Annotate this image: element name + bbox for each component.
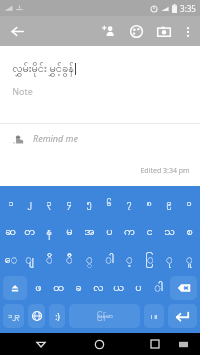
button[interactable]: ပ xyxy=(99,218,119,246)
button[interactable]: ြ xyxy=(139,246,159,274)
staticText: ၀ xyxy=(186,197,192,210)
button[interactable]: အ xyxy=(79,218,99,246)
staticText: ၁၂၃ xyxy=(8,311,20,321)
button[interactable]: Remind me xyxy=(0,124,200,152)
staticText: ၅ xyxy=(86,197,92,210)
staticText: အ xyxy=(84,224,95,240)
button[interactable]: ၁ xyxy=(1,189,20,218)
staticText: ထ xyxy=(53,280,64,296)
staticText: ါ xyxy=(105,252,114,268)
staticText: ဆ xyxy=(5,224,16,240)
button[interactable]: ျ xyxy=(20,246,39,274)
staticText: Remind me xyxy=(33,132,78,144)
staticText: ၊ ။ xyxy=(151,310,157,322)
button[interactable]: ၆ xyxy=(99,189,119,218)
button[interactable]: Backspace xyxy=(170,276,197,300)
staticText: စ xyxy=(186,224,193,240)
button[interactable]: လ xyxy=(88,274,108,302)
staticText: တ xyxy=(24,224,35,240)
button[interactable]: ၂ xyxy=(20,189,39,218)
button[interactable]: ခ xyxy=(68,274,88,302)
button[interactable]: Shift xyxy=(3,276,27,300)
staticText: ၆ xyxy=(106,197,112,210)
button[interactable]: ဆ xyxy=(1,218,20,246)
staticText: ီ xyxy=(66,252,73,268)
button[interactable]: Space xyxy=(69,304,140,328)
button[interactable]: န xyxy=(39,218,59,246)
button[interactable]: ၃ xyxy=(39,189,59,218)
staticText: ၇ xyxy=(126,197,132,210)
button[interactable]: လွှမ်းမိုင်း မွှင့်ခွန် xyxy=(0,60,200,77)
staticText: ု xyxy=(166,252,173,268)
staticText: ပ xyxy=(106,224,113,240)
button[interactable]: သ xyxy=(159,218,179,246)
staticText: ၄ xyxy=(66,197,72,210)
button[interactable]: ယ xyxy=(108,274,128,302)
staticText: Note xyxy=(12,85,33,97)
staticText: ေ xyxy=(4,252,18,268)
button[interactable]: ီ xyxy=(59,246,79,274)
staticText: ၈ xyxy=(146,197,152,210)
staticText: ျ xyxy=(25,252,34,268)
button[interactable]: Emoji xyxy=(49,304,65,328)
staticText: ၁ xyxy=(8,197,14,210)
staticText: ၉ xyxy=(166,197,172,210)
button[interactable]: ါ xyxy=(99,246,119,274)
staticText: ိ xyxy=(46,252,53,268)
staticText: သ xyxy=(164,224,175,240)
button[interactable]: က xyxy=(119,218,139,246)
button[interactable]: ူ xyxy=(179,246,199,274)
button[interactable]: Change colour xyxy=(123,18,150,45)
button[interactable]: Enter xyxy=(168,304,197,328)
button[interactable]: ္ xyxy=(79,246,99,274)
button[interactable]: Switch keyboard xyxy=(174,335,192,353)
button[interactable]: ထ xyxy=(48,274,68,302)
button[interactable]: Numbers xyxy=(3,304,24,328)
button[interactable]: ါ xyxy=(148,274,168,302)
staticText: မ xyxy=(66,224,73,240)
staticText: ပ xyxy=(135,280,142,296)
button[interactable]: Change language xyxy=(28,304,45,328)
staticText: ၂ xyxy=(27,197,32,210)
staticText: လ xyxy=(93,280,104,296)
button[interactable]: ု xyxy=(159,246,179,274)
button[interactable]: ဖ xyxy=(29,274,48,302)
button[interactable]: Hide keyboard xyxy=(31,334,51,354)
button[interactable]: ပ xyxy=(128,274,148,302)
staticText: န xyxy=(46,224,52,240)
staticText: :) xyxy=(55,311,60,322)
staticText: ၃ xyxy=(46,197,52,210)
staticText: မြန်မာ xyxy=(97,311,113,321)
button[interactable]: More options xyxy=(177,21,199,43)
button[interactable]: ေ xyxy=(1,246,20,274)
button[interactable]: ၅ xyxy=(79,189,99,218)
staticText: ္ xyxy=(86,252,93,268)
staticText: က xyxy=(124,224,135,240)
staticText: ခ xyxy=(75,280,82,296)
button[interactable]: ၉ xyxy=(159,189,179,218)
staticText: ဖ xyxy=(35,280,42,296)
button[interactable]: ၈ xyxy=(139,189,159,218)
button[interactable]: Home xyxy=(89,334,109,354)
button[interactable]: ့ xyxy=(119,246,139,274)
button[interactable]: င xyxy=(139,218,159,246)
button[interactable]: မ xyxy=(59,218,79,246)
button[interactable]: Add collaborator xyxy=(96,18,123,45)
staticText: 3:35 xyxy=(180,3,196,14)
staticText: ူ xyxy=(186,252,193,268)
staticText: ါ xyxy=(154,280,163,296)
button[interactable]: စ xyxy=(179,218,199,246)
staticText: ယ xyxy=(113,280,124,296)
staticText: Edited 3:34 pm xyxy=(140,166,190,176)
button[interactable]: ၄ xyxy=(59,189,79,218)
button[interactable]: ိ xyxy=(39,246,59,274)
button[interactable]: ၀ xyxy=(179,189,199,218)
staticText: င xyxy=(146,224,153,240)
button[interactable]: Back xyxy=(5,19,29,43)
button[interactable]: Add image xyxy=(150,18,177,45)
button[interactable]: Recent apps xyxy=(145,334,165,354)
button[interactable]: Note xyxy=(0,85,200,97)
button[interactable]: တ xyxy=(20,218,39,246)
button[interactable]: Punctuation xyxy=(144,304,164,328)
button[interactable]: ၇ xyxy=(119,189,139,218)
